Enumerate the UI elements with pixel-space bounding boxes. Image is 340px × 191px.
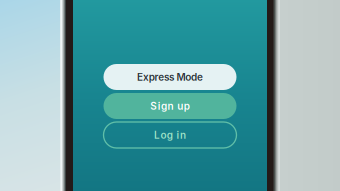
staticText: Sign up [150, 100, 190, 112]
staticText: Log in [154, 129, 186, 141]
button[interactable]: Log in [103, 122, 236, 148]
button[interactable]: Express Mode [103, 64, 236, 90]
button[interactable]: Sign up [103, 93, 236, 119]
staticText: Express Mode [137, 71, 203, 83]
